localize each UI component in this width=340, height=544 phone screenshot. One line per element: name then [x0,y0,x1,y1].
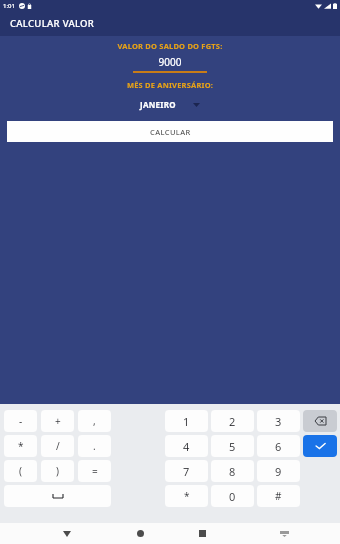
button[interactable]: 9000 [133,55,207,73]
staticText: ) [56,464,59,478]
button[interactable]: . [78,435,111,457]
staticText: * [184,489,190,503]
staticText: 1 [183,414,190,429]
button[interactable]: Recents [191,523,213,544]
button[interactable]: 8 [211,460,254,482]
staticText: ( [19,464,22,478]
button[interactable]: 5 [211,435,254,457]
button[interactable]: 2 [211,410,254,432]
staticText: + [55,414,61,428]
staticText: / [56,439,60,453]
staticText: , [93,414,96,428]
staticText: 0 [229,489,236,504]
staticText: = [92,464,98,478]
staticText: 6 [275,439,282,454]
staticText: VALOR DO SALDO DO FGTS: [0,41,340,51]
staticText: * [18,439,24,453]
button[interactable]: , [78,410,111,432]
staticText: # [275,489,282,503]
button[interactable]: Backspace [303,410,337,432]
staticText: 9000 [133,55,207,69]
button[interactable]: 4 [165,435,208,457]
button[interactable]: 7 [165,460,208,482]
button[interactable]: JANEIRO [136,97,204,112]
staticText: 1:01 [3,2,15,10]
staticText: 5 [229,439,236,454]
button[interactable]: 3 [257,410,300,432]
button[interactable]: Enter [303,435,337,457]
button[interactable]: / [41,435,74,457]
button[interactable]: # [257,485,300,507]
button[interactable]: * [4,435,37,457]
button[interactable]: ) [41,460,74,482]
button[interactable]: * [165,485,208,507]
button[interactable]: 0 [211,485,254,507]
button[interactable]: CALCULAR [7,121,333,142]
staticText: 7 [183,464,190,479]
staticText: 2 [229,414,236,429]
staticText: 8 [229,464,236,479]
button[interactable]: Space [4,485,111,507]
staticText: 4 [183,439,190,454]
button[interactable]: + [41,410,74,432]
button[interactable]: Back [56,523,78,544]
staticText: . [93,439,96,453]
button[interactable]: 6 [257,435,300,457]
button[interactable]: 9 [257,460,300,482]
button[interactable]: = [78,460,111,482]
staticText: - [19,414,23,428]
button[interactable]: - [4,410,37,432]
button[interactable]: 1 [165,410,208,432]
staticText: MÊS DE ANIVERSÁRIO: [0,80,340,90]
staticText: CALCULAR VALOR [10,17,95,30]
staticText: 3 [275,414,282,429]
button[interactable]: ( [4,460,37,482]
staticText: CALCULAR [150,127,191,137]
staticText: JANEIRO [140,99,176,110]
button[interactable]: Home [129,523,151,544]
staticText: 9 [275,464,282,479]
button[interactable]: Hide keyboard [273,523,295,544]
